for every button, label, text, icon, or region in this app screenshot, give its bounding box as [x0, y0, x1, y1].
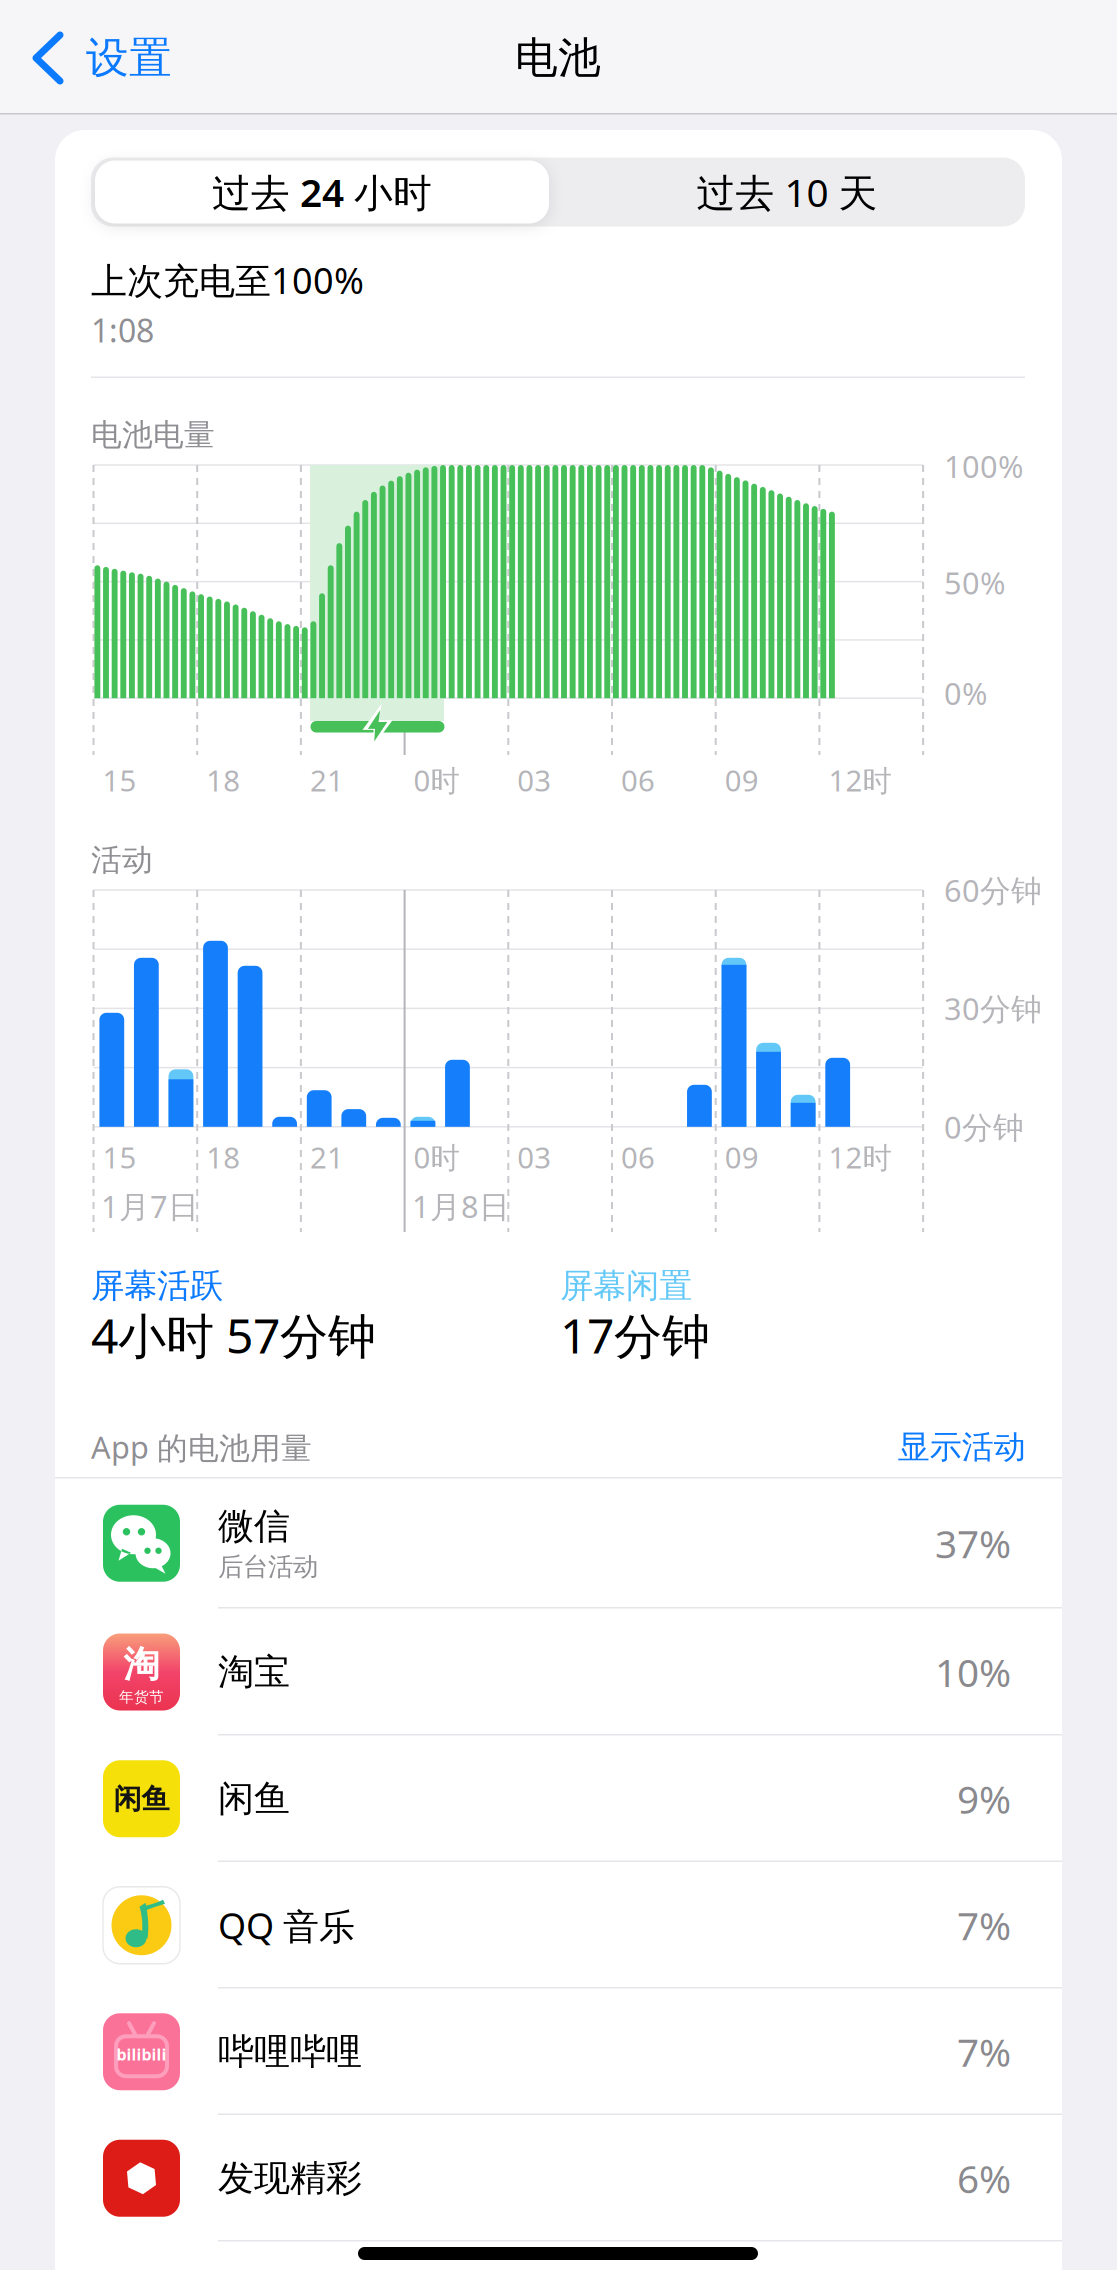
staticText: 09	[725, 760, 759, 799]
button[interactable]: QQ 音乐	[55, 1862, 1062, 1988]
staticText: 18	[206, 1137, 240, 1176]
staticText: 电池电量	[91, 416, 215, 454]
button[interactable]: bilibili	[55, 1988, 1062, 2115]
staticText: 30分钟	[944, 988, 1042, 1029]
staticText: 1月7日	[101, 1186, 199, 1226]
staticText: 15	[102, 1137, 136, 1176]
staticText: 21	[310, 760, 344, 799]
staticText: 屏幕活跃	[91, 1265, 223, 1306]
button[interactable]: 过去 10 天	[549, 157, 1025, 226]
staticText: 闲鱼	[218, 1777, 290, 1821]
button[interactable]: 显示活动	[726, 1426, 1026, 1468]
staticText: 60分钟	[944, 870, 1042, 910]
staticText: 显示活动	[898, 1427, 1026, 1467]
staticText: 0分钟	[944, 1106, 1024, 1147]
staticText: 0时	[414, 760, 460, 799]
staticText: 闲鱼	[113, 1782, 169, 1816]
staticText: 4小时 57分钟	[91, 1303, 376, 1367]
staticText: 设置	[86, 32, 172, 84]
staticText: 电池	[515, 32, 601, 84]
staticText: 12时	[828, 760, 891, 799]
button[interactable]: 微信	[55, 1478, 1062, 1608]
staticText: 0时	[414, 1137, 460, 1176]
staticText: 06	[621, 1137, 655, 1176]
staticText: 06	[621, 760, 655, 799]
staticText: 10%	[935, 1646, 1011, 1698]
staticText: 09	[725, 1137, 759, 1176]
staticText: 发现精彩	[218, 2156, 362, 2200]
staticText: 过去 10 天	[696, 166, 877, 218]
staticText: QQ 音乐	[218, 1901, 355, 1949]
staticText: 18	[206, 760, 240, 799]
staticText: App 的电池用量	[91, 1427, 312, 1467]
staticText: 15	[102, 760, 136, 799]
staticText: 9%	[957, 1773, 1011, 1824]
staticText: 屏幕闲置	[560, 1265, 692, 1306]
staticText: 12时	[828, 1137, 891, 1176]
staticText: 6%	[957, 2153, 1011, 2204]
staticText: 21	[310, 1137, 344, 1176]
staticText: 17分钟	[560, 1303, 710, 1367]
button[interactable]: 设置	[36, 32, 172, 84]
staticText: 7%	[957, 2026, 1011, 2077]
staticText: 微信	[218, 1504, 290, 1548]
button[interactable]: 淘	[55, 1608, 1062, 1735]
staticText: 03	[517, 1137, 551, 1176]
staticText: 活动	[91, 841, 153, 879]
staticText: 过去 24 小时	[212, 166, 432, 218]
staticText: 1月8日	[412, 1186, 510, 1226]
staticText: 后台活动	[218, 1551, 318, 1582]
staticText: 年货节	[119, 1688, 164, 1706]
button[interactable]: 过去 24 小时	[95, 160, 549, 223]
staticText: 50%	[944, 562, 1005, 603]
staticText: bilibili	[116, 2044, 166, 2065]
staticText: 上次充电至100%	[91, 256, 364, 304]
staticText: 淘宝	[218, 1650, 290, 1694]
staticText: 淘	[123, 1642, 159, 1687]
staticText: 03	[517, 760, 551, 799]
staticText: 1:08	[91, 309, 154, 351]
button[interactable]: 闲鱼	[55, 1735, 1062, 1862]
staticText: 7%	[957, 1900, 1011, 1951]
staticText: 37%	[935, 1518, 1011, 1569]
staticText: 100%	[944, 446, 1023, 486]
staticText: 0%	[944, 673, 987, 713]
staticText: 哔哩哔哩	[218, 2030, 362, 2074]
button[interactable]: 发现精彩	[55, 2115, 1062, 2241]
